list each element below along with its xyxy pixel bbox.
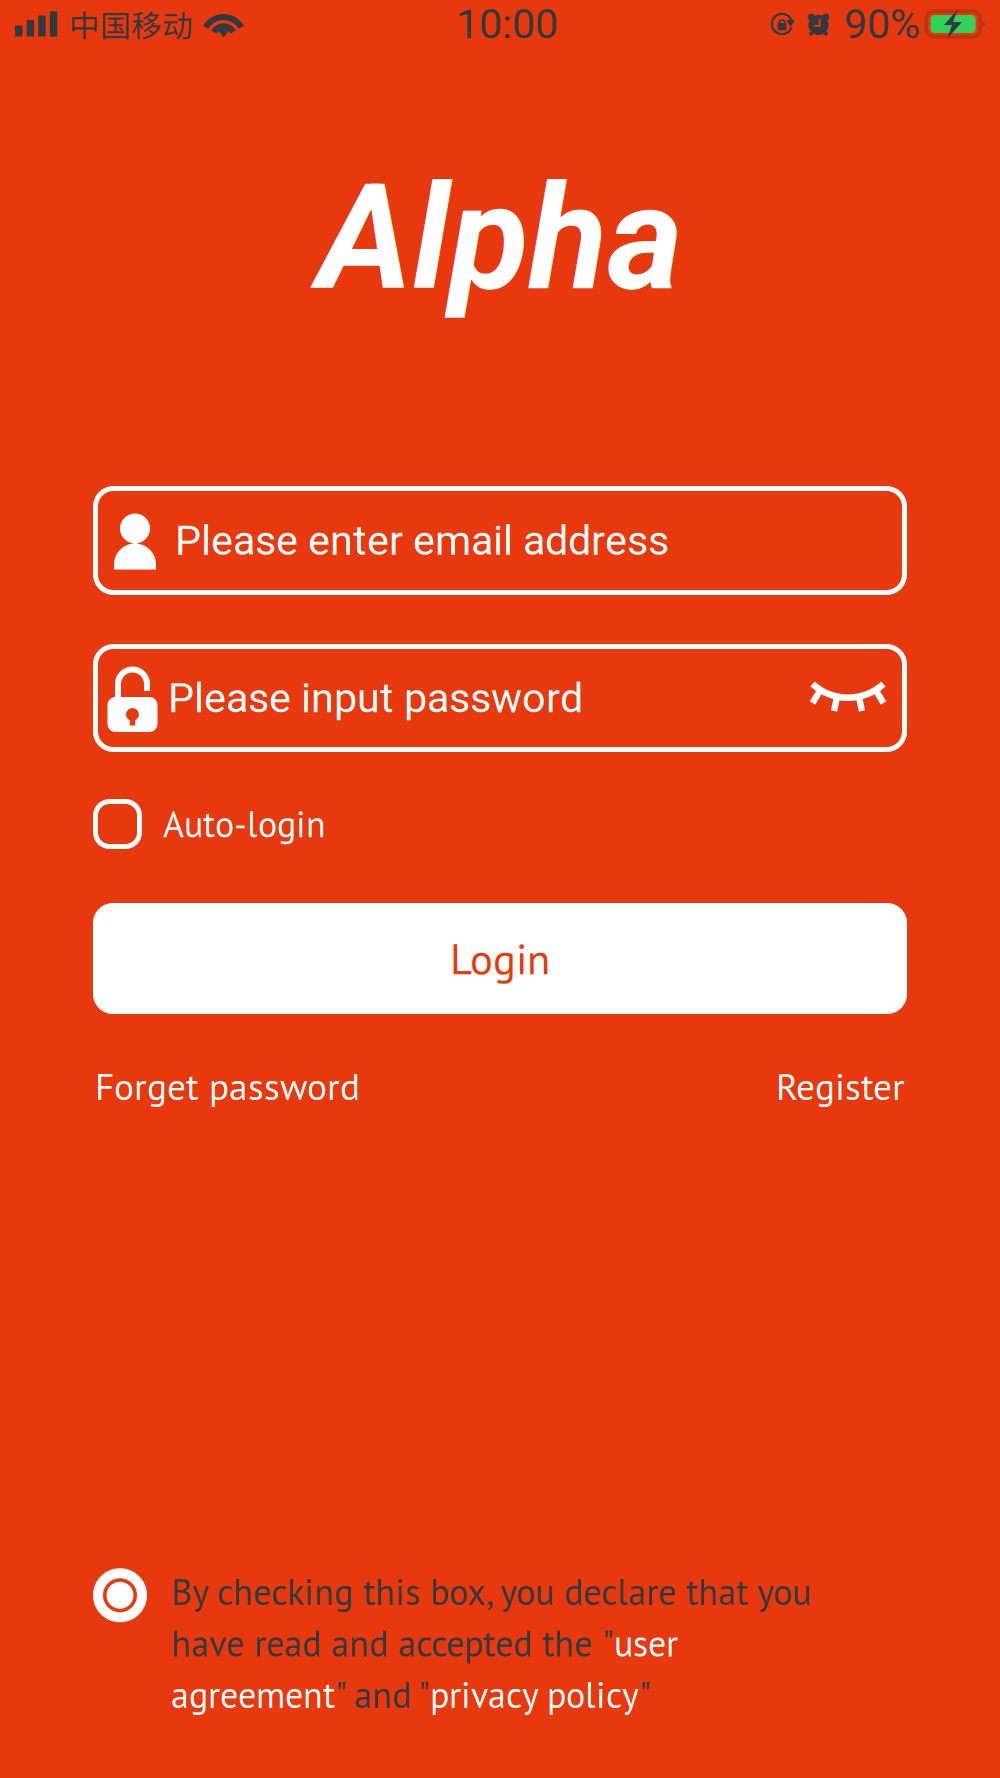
staticText: " xyxy=(602,1620,614,1666)
staticText: 中国移动 xyxy=(69,2,193,46)
staticText: 10:00 xyxy=(456,0,558,48)
button[interactable]: Register xyxy=(776,1062,905,1110)
staticText: agreement xyxy=(171,1671,335,1718)
staticText: Please input password xyxy=(168,674,583,722)
staticText: " and " xyxy=(335,1671,430,1718)
staticText: Register xyxy=(776,1062,905,1110)
staticText: Login xyxy=(450,931,550,986)
button[interactable]: Please enter email address xyxy=(93,486,907,595)
staticText: Forget password xyxy=(95,1062,360,1110)
button[interactable]: Agree to the user agreement and privacy … xyxy=(93,1568,147,1622)
staticText: " xyxy=(639,1671,651,1718)
button[interactable]: Auto-login xyxy=(93,799,326,849)
staticText: Please enter email address xyxy=(175,516,669,565)
button[interactable]: Please input password xyxy=(93,644,907,752)
button[interactable]: Login xyxy=(93,903,907,1014)
staticText: user xyxy=(614,1620,678,1666)
staticText: Alpha xyxy=(317,153,682,323)
staticText: Auto-login xyxy=(163,801,326,847)
staticText: privacy policy xyxy=(430,1671,639,1718)
button[interactable]: Forget password xyxy=(95,1062,360,1110)
staticText: By checking this box, you declare that y… xyxy=(171,1568,811,1615)
staticText: have read and accepted the xyxy=(171,1620,602,1666)
staticText: 90% xyxy=(844,0,920,48)
